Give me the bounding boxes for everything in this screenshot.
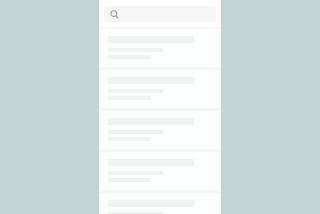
button[interactable] bbox=[99, 193, 221, 214]
button[interactable]: Search bbox=[104, 6, 216, 22]
button[interactable] bbox=[99, 70, 221, 108]
button[interactable] bbox=[99, 152, 221, 190]
button[interactable] bbox=[99, 111, 221, 149]
button[interactable] bbox=[99, 29, 221, 67]
